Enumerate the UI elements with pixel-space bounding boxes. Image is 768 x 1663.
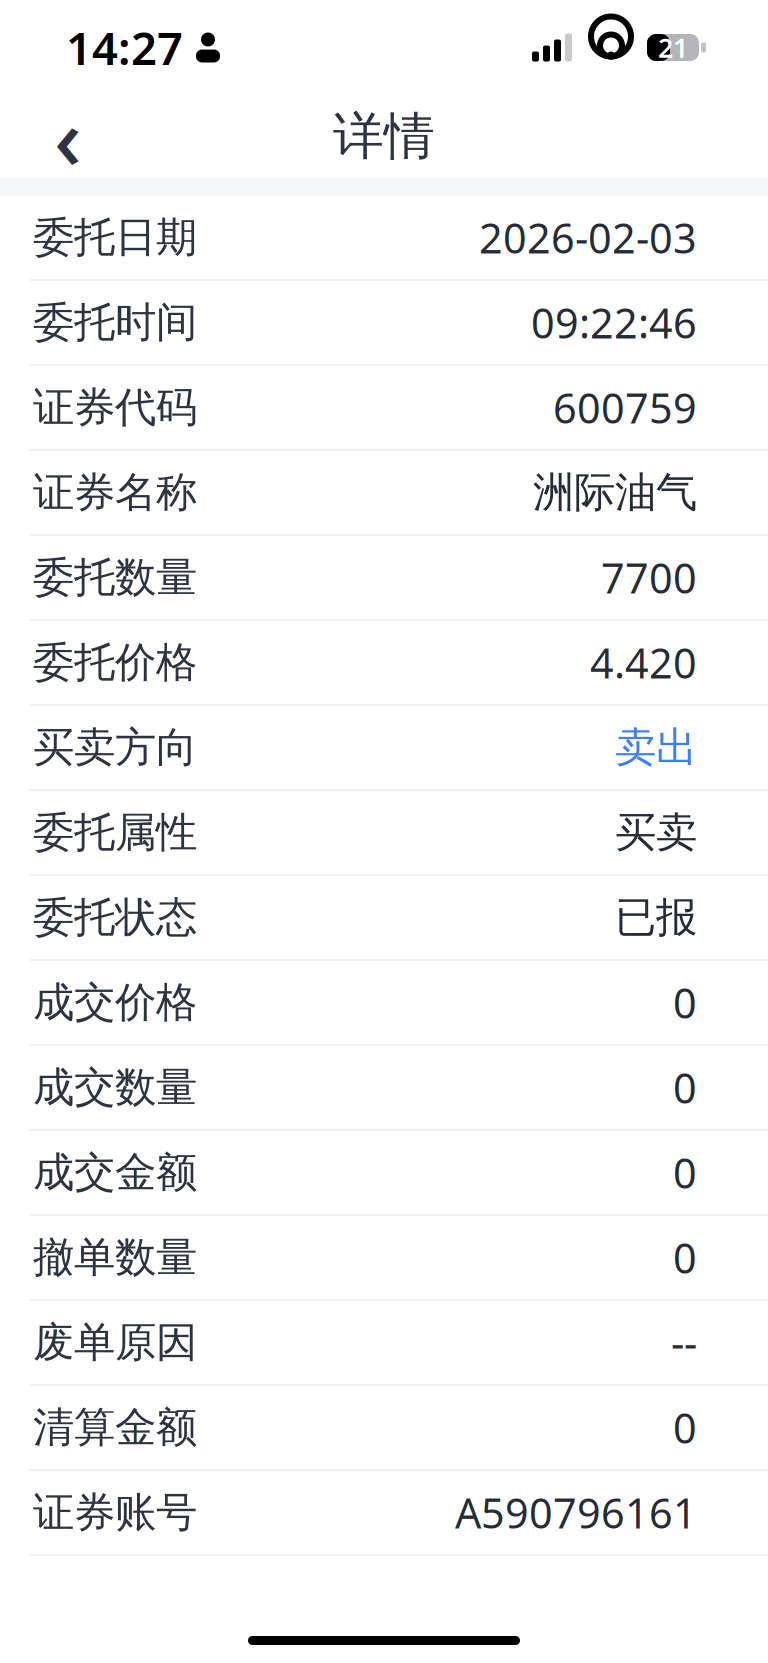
staticText: 600759 [553, 380, 697, 435]
staticText: 09:22:46 [531, 295, 697, 350]
staticText: A590796161 [455, 1485, 697, 1540]
staticText: 委托时间 [33, 297, 197, 348]
staticText: 证券名称 [33, 467, 197, 518]
staticText: 0 [673, 1400, 697, 1455]
staticText: 成交价格 [33, 977, 197, 1028]
staticText: 撤单数量 [33, 1232, 197, 1283]
staticText: 清算金额 [33, 1402, 197, 1453]
staticText: 成交金额 [33, 1147, 197, 1198]
staticText: 成交数量 [33, 1062, 197, 1113]
staticText: 买卖方向 [33, 722, 197, 773]
staticText: 21 [658, 30, 688, 65]
staticText: 0 [673, 1145, 697, 1200]
staticText: 废单原因 [33, 1317, 197, 1368]
button[interactable]: Back [28, 95, 108, 177]
staticText: 委托价格 [33, 637, 197, 688]
staticText: 委托状态 [33, 892, 197, 943]
staticText: ‹ [54, 80, 82, 193]
staticText: 7700 [601, 550, 697, 605]
staticText: 委托属性 [33, 807, 197, 858]
staticText: 详情 [333, 105, 435, 168]
staticText: 委托日期 [33, 212, 197, 263]
staticText: 2026-02-03 [479, 210, 697, 265]
staticText: 洲际油气 [533, 467, 697, 518]
staticText: 0 [673, 1230, 697, 1285]
staticText: 证券账号 [33, 1487, 197, 1538]
staticText: 14:27 [66, 17, 183, 78]
staticText: -- [671, 1315, 697, 1370]
staticText: 0 [673, 975, 697, 1030]
staticText: 委托数量 [33, 552, 197, 603]
staticText: 买卖 [615, 807, 697, 858]
staticText: 证券代码 [33, 382, 197, 433]
staticText: 0 [673, 1060, 697, 1115]
staticText: 卖出 [615, 722, 697, 773]
staticText: 4.420 [590, 635, 697, 690]
staticText: 已报 [615, 892, 697, 943]
